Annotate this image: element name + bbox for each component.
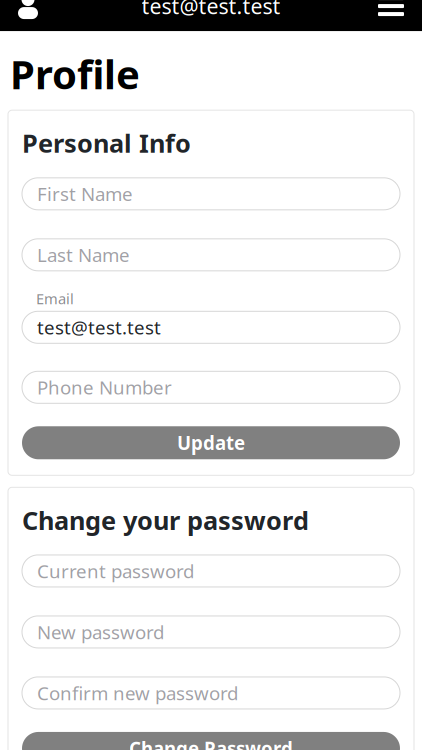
staticText: Phone Number (37, 375, 172, 400)
button[interactable]: Account (6, 0, 50, 31)
staticText: Current password (37, 558, 194, 583)
button[interactable]: Change Password (22, 732, 400, 750)
button[interactable]: Menu (366, 0, 416, 31)
staticText: Profile (10, 47, 140, 100)
button[interactable]: Confirm new password (22, 677, 400, 709)
button[interactable]: First Name (22, 178, 400, 210)
staticText: Email (36, 289, 74, 308)
button[interactable]: Phone Number (22, 371, 400, 403)
staticText: Update (177, 430, 245, 455)
staticText: Change Password (129, 736, 293, 750)
staticText: test@test.test (37, 315, 161, 340)
button[interactable]: New password (22, 616, 400, 648)
staticText: Confirm new password (37, 680, 238, 705)
button[interactable]: Current password (22, 555, 400, 587)
button[interactable]: Last Name (22, 239, 400, 271)
staticText: New password (37, 619, 164, 644)
staticText: Personal Info (22, 126, 191, 160)
staticText: Last Name (37, 242, 130, 267)
button[interactable]: test@test.test (22, 311, 400, 343)
button[interactable]: Update (22, 426, 400, 459)
staticText: First Name (37, 181, 133, 206)
staticText: test@test.test (141, 0, 280, 20)
staticText: Change your password (22, 503, 309, 537)
